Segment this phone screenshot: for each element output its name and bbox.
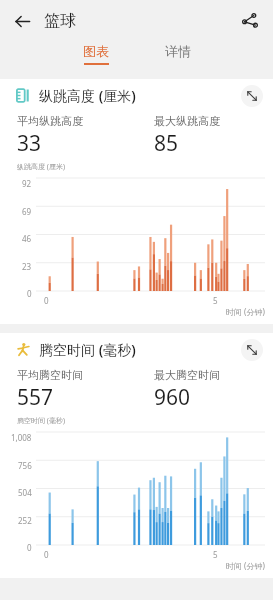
staticText: 33 [17,129,42,158]
staticText: 篮球 [44,11,76,31]
staticText: 1,008 [11,432,32,443]
staticText: 最大腾空时间 [154,368,220,382]
button[interactable]: Expand [241,339,263,361]
staticText: 92 [22,178,32,189]
staticText: 纵跳高度 (厘米) [39,86,136,105]
staticText: 0 [27,288,32,299]
staticText: 557 [17,383,54,412]
staticText: 纵跳高度 (厘米) [17,162,66,172]
staticText: 5 [213,295,218,306]
staticText: 最大纵跳高度 [154,114,220,128]
staticText: 腾空时间 (毫秒) [39,340,136,359]
staticText: 腾空时间 (毫秒) [17,416,66,426]
staticText: 时间 (分钟) [226,560,265,571]
staticText: 0 [44,549,49,560]
staticText: 85 [154,129,179,158]
staticText: 252 [18,515,32,526]
staticText: 960 [154,383,191,412]
staticText: 5 [213,549,218,560]
staticText: 46 [22,233,32,244]
staticText: 平均腾空时间 [17,368,83,382]
staticText: 时间 (分钟) [226,306,265,317]
button[interactable]: Back [7,6,37,36]
staticText: 23 [22,261,32,272]
staticText: 504 [18,487,32,498]
staticText: 69 [22,206,32,217]
button[interactable]: Share [235,6,265,36]
button[interactable]: 图表 [75,42,117,66]
staticText: 756 [18,460,32,471]
staticText: 平均纵跳高度 [17,114,83,128]
button[interactable]: 详情 [157,42,199,66]
staticText: 图表 [83,43,109,59]
staticText: 详情 [165,43,191,59]
staticText: 0 [27,542,32,553]
button[interactable]: Expand [241,85,263,107]
staticText: 0 [44,295,49,306]
